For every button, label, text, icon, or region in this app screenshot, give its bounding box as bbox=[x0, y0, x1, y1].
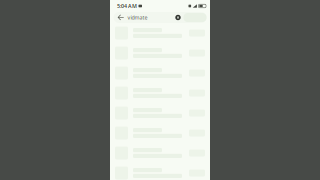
button[interactable]: Loading result bbox=[110, 83, 210, 103]
button[interactable]: Loading result bbox=[110, 163, 210, 180]
button[interactable]: Loading result bbox=[110, 23, 210, 43]
button[interactable]: Loading result bbox=[110, 143, 210, 163]
button[interactable]: Loading result bbox=[110, 123, 210, 143]
button[interactable]: Back bbox=[113, 12, 127, 23]
button[interactable]: Loading result bbox=[110, 63, 210, 83]
button[interactable]: Loading result bbox=[110, 103, 210, 123]
button[interactable]: Loading result bbox=[110, 43, 210, 63]
staticText: 5:04 AM bbox=[117, 2, 137, 10]
staticText: vidmate bbox=[127, 14, 147, 21]
button[interactable]: Clear search bbox=[172, 12, 183, 23]
